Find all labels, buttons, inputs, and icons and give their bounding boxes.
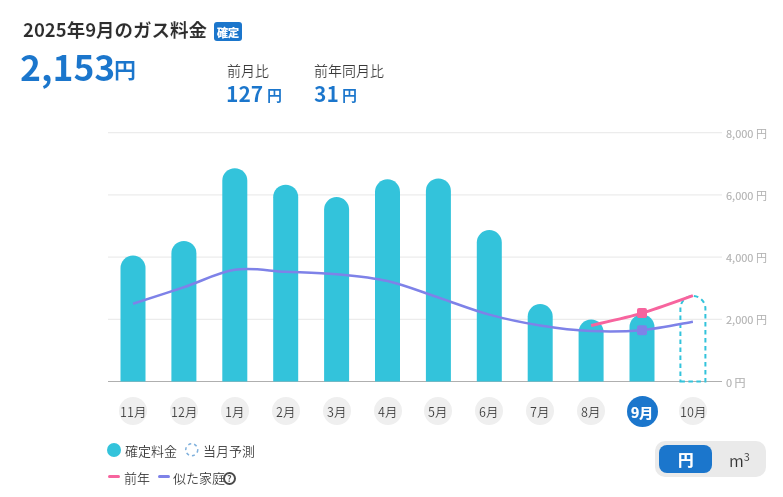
staticText: 円 [114, 52, 137, 84]
staticText: 127 [226, 78, 264, 108]
staticText: 確定料金 [125, 441, 178, 460]
staticText: 6,000 円 [726, 187, 767, 203]
button[interactable]: 円 [659, 445, 712, 473]
button[interactable]: 9月 [627, 396, 658, 427]
staticText: 1月 [225, 402, 245, 420]
staticText: ? [227, 472, 232, 485]
staticText: 8,000 円 [726, 125, 767, 141]
staticText: 円 [342, 84, 358, 106]
button[interactable]: 7月 [526, 397, 554, 425]
staticText: m3 [729, 448, 750, 471]
staticText: 2,000 円 [726, 311, 767, 327]
button[interactable]: 8月 [577, 397, 605, 425]
button[interactable]: 5月 [424, 397, 452, 425]
button[interactable]: 11月 [119, 397, 147, 425]
staticText: 10月 [680, 402, 707, 420]
button[interactable]: 確定 [214, 22, 242, 41]
staticText: 5月 [428, 402, 448, 420]
staticText: 31 [314, 78, 339, 108]
button[interactable]: 12月 [170, 397, 198, 425]
staticText: 2,153 [20, 40, 116, 91]
button[interactable]: ? [223, 472, 236, 485]
button[interactable]: 10月 [679, 397, 707, 425]
button[interactable]: 3月 [323, 397, 351, 425]
staticText: 2025年9月のガス料金 [23, 16, 208, 43]
button[interactable]: m3 [712, 445, 766, 473]
button[interactable]: 2月 [272, 397, 300, 425]
button[interactable]: 1月 [221, 397, 249, 425]
staticText: 4月 [378, 402, 398, 420]
staticText: 8月 [581, 402, 601, 420]
staticText: 0 円 [726, 374, 746, 390]
staticText: 確定 [217, 24, 239, 40]
staticText: 似た家庭 [173, 468, 226, 487]
staticText: 前年 [124, 468, 151, 487]
staticText: 前月比 [227, 60, 269, 80]
staticText: 4,000 円 [726, 249, 767, 265]
staticText: 3月 [327, 402, 347, 420]
button[interactable]: 6月 [475, 397, 503, 425]
staticText: 円 [267, 84, 283, 106]
button[interactable]: 4月 [374, 397, 402, 425]
staticText: 円 [678, 448, 694, 470]
staticText: 2月 [276, 402, 296, 420]
staticText: 9月 [631, 402, 654, 422]
staticText: 12月 [171, 402, 198, 420]
staticText: 当月予測 [203, 441, 256, 460]
staticText: 前年同月比 [314, 60, 384, 80]
staticText: 6月 [479, 402, 499, 420]
staticText: 7月 [530, 402, 550, 420]
staticText: 11月 [120, 402, 147, 420]
